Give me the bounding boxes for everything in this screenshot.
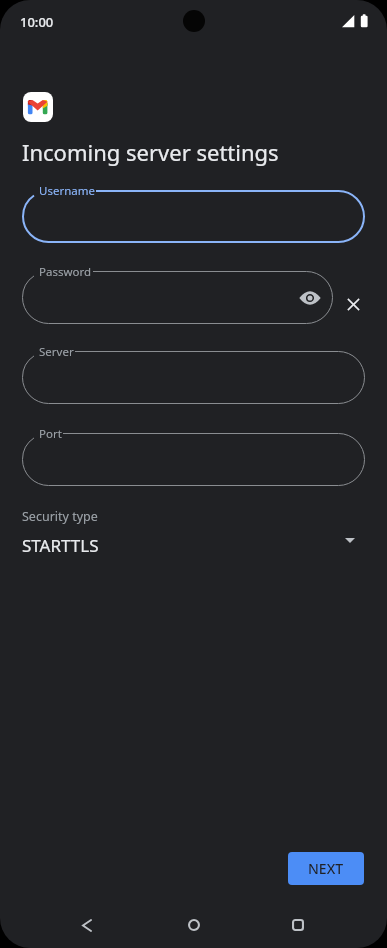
button[interactable]: Username: [22, 190, 365, 243]
staticText: Server: [39, 344, 74, 360]
button[interactable]: Port: [22, 433, 365, 486]
staticText: Username: [39, 183, 95, 199]
staticText: Security type: [22, 508, 98, 525]
button[interactable]: Password: [22, 271, 333, 324]
staticText: STARTTLS: [22, 534, 99, 557]
staticText: Incoming server settings: [22, 137, 279, 167]
button[interactable]: Clear: [333, 284, 373, 324]
button[interactable]: Recent apps: [276, 903, 320, 947]
staticText: NEXT: [308, 859, 344, 878]
button[interactable]: Home: [172, 903, 216, 947]
button[interactable]: Back: [65, 903, 109, 947]
staticText: Password: [39, 264, 92, 280]
button[interactable]: Show password: [294, 282, 326, 314]
button[interactable]: NEXT: [288, 852, 364, 885]
staticText: Port: [39, 426, 62, 442]
button[interactable]: Server: [22, 351, 365, 404]
staticText: 10:00: [20, 13, 54, 31]
button[interactable]: Security type: [0, 505, 387, 565]
